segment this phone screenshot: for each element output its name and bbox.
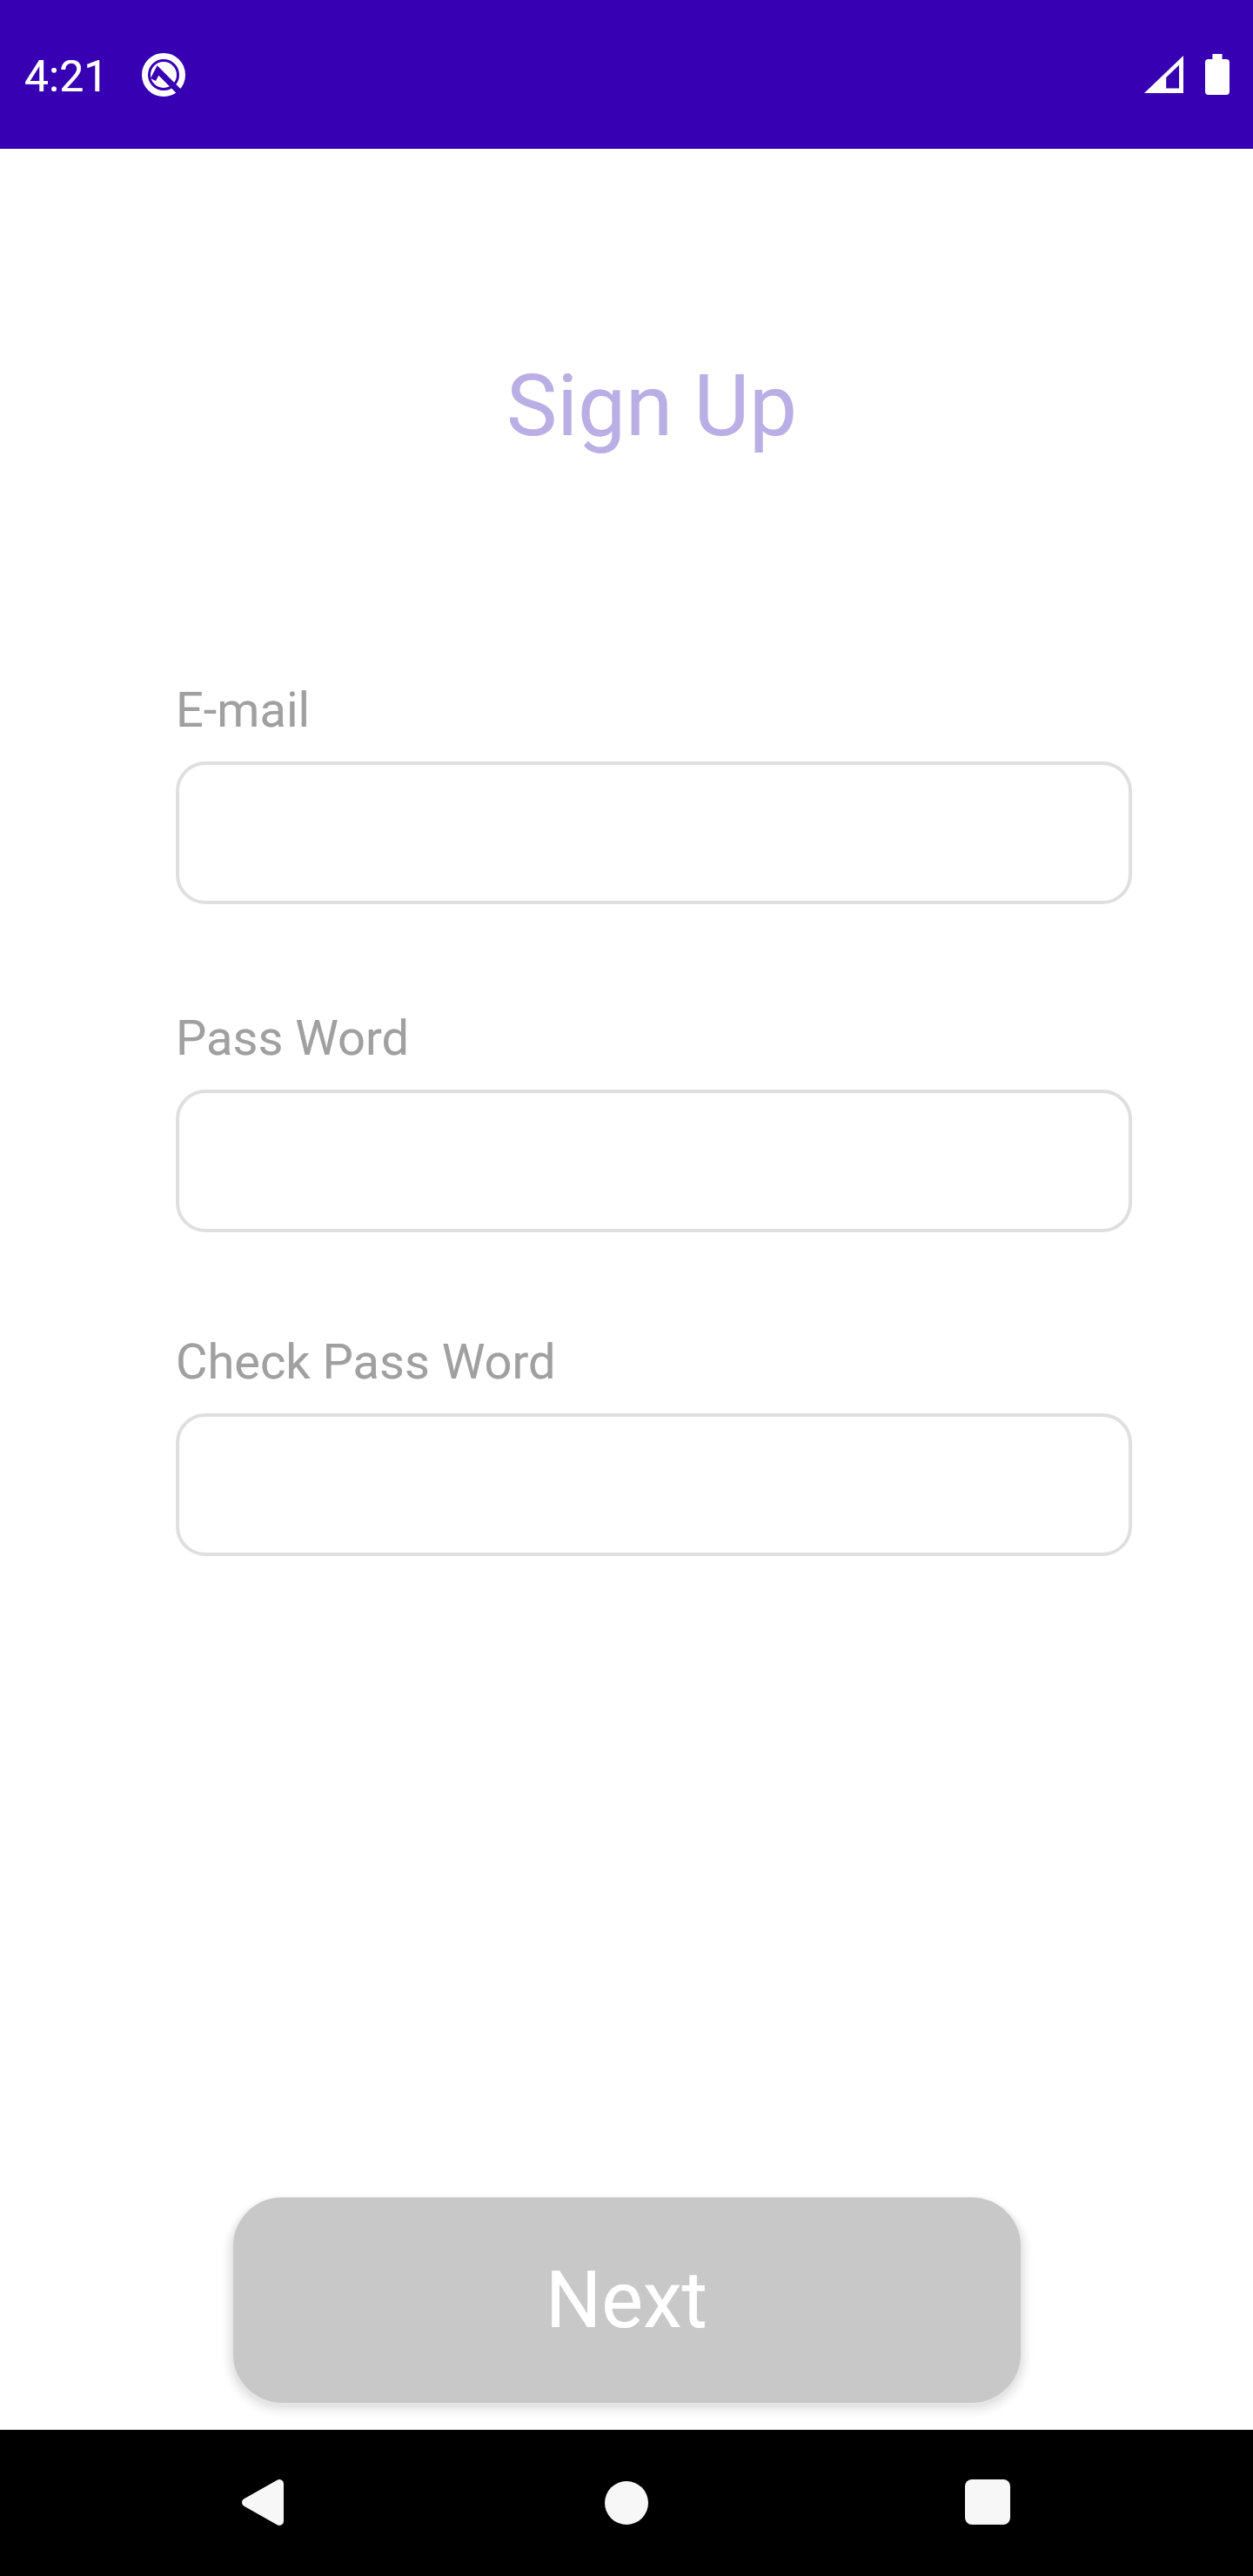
- staticText: Sign Up: [25, 356, 1253, 456]
- button[interactable]: Next: [233, 2197, 1021, 2403]
- button[interactable]: [176, 1090, 1132, 1232]
- button[interactable]: Recents: [927, 2441, 1049, 2563]
- button[interactable]: Back: [200, 2445, 322, 2567]
- staticText: E-mail: [176, 681, 311, 739]
- staticText: Next: [546, 2255, 708, 2346]
- staticText: 4:21: [24, 51, 109, 103]
- staticText: Check Pass Word: [176, 1333, 556, 1391]
- button[interactable]: [176, 761, 1132, 904]
- button[interactable]: [176, 1413, 1132, 1556]
- button[interactable]: Home: [566, 2442, 687, 2564]
- staticText: Pass Word: [176, 1010, 409, 1067]
